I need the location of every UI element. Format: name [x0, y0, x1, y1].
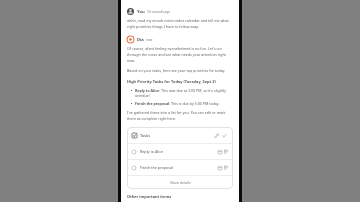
- staticText: 16 seconds ago: [147, 10, 171, 14]
- staticText: Reply to Alice: [140, 149, 164, 154]
- staticText: Dia: [137, 37, 144, 43]
- staticText: Show details: [170, 180, 191, 185]
- staticText: ahhh, read my emails notes todos calenda…: [127, 18, 233, 29]
- button[interactable]: Reply to Alice: [127, 144, 233, 159]
- button[interactable]: Finish the proposal: [127, 160, 233, 175]
- staticText: now: [146, 38, 153, 42]
- other: Flag: [224, 166, 228, 170]
- staticText: Reply to Alice: This was due at 3:00 PM,…: [135, 88, 233, 98]
- staticText: Of course, afant feeling overwhelmed is …: [127, 46, 233, 63]
- staticText: I've gathered these into a list for you.…: [127, 110, 233, 121]
- other: Tasks: [132, 133, 137, 138]
- staticText: Finish the proposal: This is due by 5:00…: [135, 101, 220, 106]
- staticText: Other important items: [127, 194, 172, 199]
- staticText: Finish the proposal: [140, 165, 173, 170]
- button[interactable]: Edit: [212, 131, 220, 139]
- staticText: High Priority Tasks for Today (Tuesday, …: [127, 79, 216, 84]
- other: Flag: [224, 150, 228, 154]
- other: Calendar: [218, 150, 222, 154]
- staticText: You: [137, 9, 145, 15]
- staticText: Tasks: [140, 133, 151, 138]
- button[interactable]: Show details: [127, 176, 233, 189]
- other: Calendar: [218, 166, 222, 170]
- button[interactable]: Done: [220, 131, 228, 139]
- button[interactable]: Tasks: [127, 127, 233, 143]
- staticText: Based on your tasks, here are your top p…: [127, 68, 225, 73]
